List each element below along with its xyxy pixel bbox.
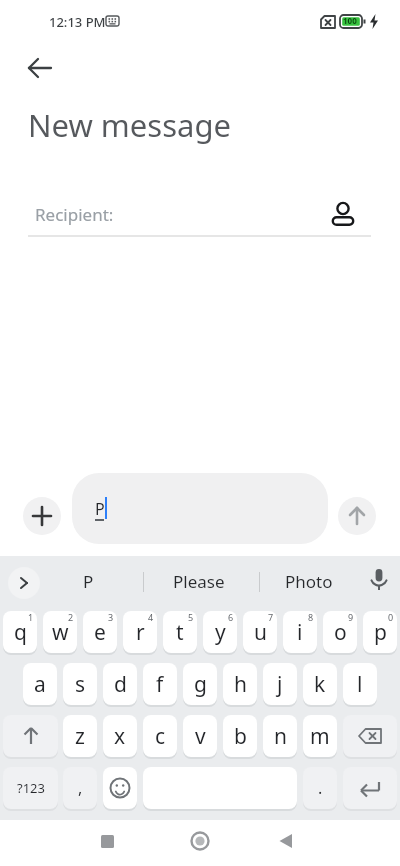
- staticText: f: [156, 670, 164, 699]
- staticText: 7: [268, 611, 274, 623]
- button[interactable]: l: [343, 663, 377, 705]
- button[interactable]: f: [143, 663, 177, 705]
- staticText: q: [14, 618, 27, 647]
- staticText: 3: [108, 611, 114, 623]
- staticText: Recipient:: [35, 203, 114, 226]
- staticText: m: [310, 722, 330, 751]
- button[interactable]: i: [283, 611, 317, 653]
- staticText: t: [176, 618, 184, 647]
- button[interactable]: z: [63, 715, 97, 757]
- button[interactable]: x: [103, 715, 137, 757]
- button[interactable]: o: [323, 611, 357, 653]
- staticText: ?123: [17, 779, 45, 797]
- button[interactable]: [343, 715, 397, 757]
- button[interactable]: ?123: [3, 767, 58, 809]
- staticText: 6: [228, 611, 234, 623]
- staticText: c: [155, 722, 166, 751]
- staticText: a: [34, 670, 46, 699]
- button[interactable]: g: [183, 663, 217, 705]
- staticText: i: [297, 618, 303, 647]
- button[interactable]: s: [63, 663, 97, 705]
- staticText: o: [334, 618, 347, 647]
- staticText: ,: [78, 777, 83, 799]
- staticText: y: [215, 618, 226, 647]
- button[interactable]: d: [103, 663, 137, 705]
- staticText: 0: [388, 611, 394, 623]
- button[interactable]: e: [83, 611, 117, 653]
- staticText: r: [136, 618, 145, 647]
- staticText: n: [274, 722, 287, 751]
- button[interactable]: .: [303, 767, 337, 809]
- staticText: w: [52, 618, 69, 647]
- staticText: Photo: [285, 570, 333, 593]
- staticText: New message: [28, 104, 231, 146]
- button[interactable]: [20, 48, 60, 88]
- button[interactable]: q: [3, 611, 37, 653]
- button[interactable]: t: [163, 611, 197, 653]
- button[interactable]: [87, 821, 127, 861]
- button[interactable]: m: [303, 715, 337, 757]
- staticText: 8: [308, 611, 314, 623]
- staticText: 4: [148, 611, 154, 623]
- button[interactable]: p: [363, 611, 397, 653]
- staticText: 5: [188, 611, 194, 623]
- button[interactable]: h: [223, 663, 257, 705]
- button[interactable]: [3, 715, 58, 757]
- staticText: j: [277, 670, 283, 699]
- button[interactable]: b: [223, 715, 257, 757]
- staticText: p: [374, 618, 387, 647]
- staticText: 12:13 PM: [49, 13, 106, 31]
- button[interactable]: w: [43, 611, 77, 653]
- staticText: P: [83, 570, 94, 593]
- button[interactable]: a: [23, 663, 57, 705]
- button[interactable]: Photo: [264, 556, 354, 606]
- staticText: b: [234, 722, 247, 751]
- button[interactable]: n: [263, 715, 297, 757]
- staticText: 2: [68, 611, 74, 623]
- button[interactable]: v: [183, 715, 217, 757]
- button[interactable]: j: [263, 663, 297, 705]
- button[interactable]: P: [72, 473, 328, 544]
- staticText: Please: [173, 570, 225, 593]
- button[interactable]: [343, 767, 397, 809]
- staticText: x: [114, 722, 126, 751]
- button[interactable]: u: [243, 611, 277, 653]
- button[interactable]: Recipient:: [35, 192, 355, 236]
- staticText: g: [194, 670, 207, 699]
- staticText: 100: [343, 15, 357, 26]
- staticText: s: [75, 670, 86, 699]
- staticText: u: [254, 618, 267, 647]
- button[interactable]: ,: [63, 767, 97, 809]
- staticText: 9: [348, 611, 354, 623]
- staticText: l: [357, 670, 363, 699]
- staticText: 1: [28, 611, 34, 623]
- button[interactable]: [180, 821, 220, 861]
- button[interactable]: k: [303, 663, 337, 705]
- button[interactable]: [8, 567, 40, 599]
- staticText: h: [234, 670, 247, 699]
- button[interactable]: r: [123, 611, 157, 653]
- staticText: v: [195, 722, 206, 751]
- staticText: e: [94, 618, 106, 647]
- staticText: d: [114, 670, 127, 699]
- button[interactable]: [338, 497, 376, 535]
- staticText: P: [95, 498, 105, 520]
- button[interactable]: [23, 497, 61, 535]
- button[interactable]: [103, 767, 137, 809]
- button[interactable]: P: [58, 556, 118, 606]
- staticText: .: [318, 777, 323, 799]
- button[interactable]: y: [203, 611, 237, 653]
- staticText: k: [314, 670, 326, 699]
- button[interactable]: Please: [154, 556, 244, 606]
- staticText: z: [75, 722, 85, 751]
- button[interactable]: [266, 821, 306, 861]
- button[interactable]: c: [143, 715, 177, 757]
